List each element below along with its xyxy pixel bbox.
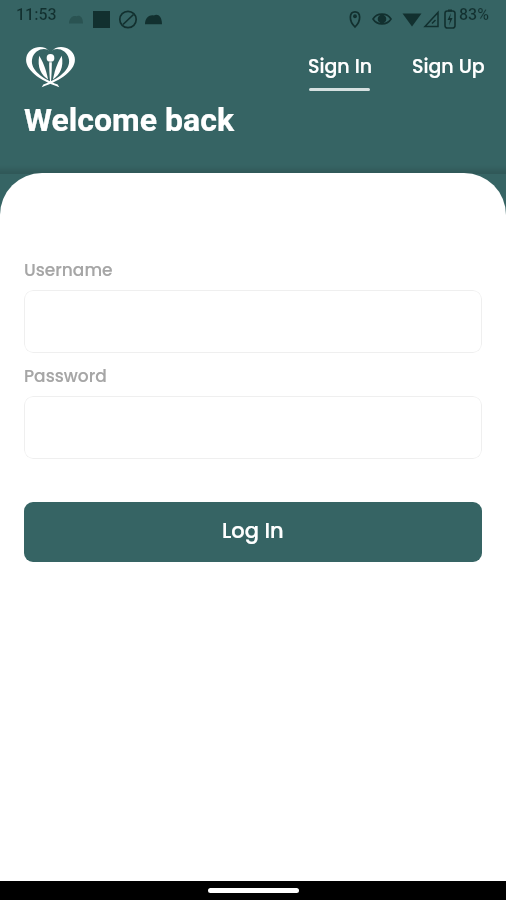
button[interactable]: Sign Up xyxy=(404,49,492,92)
staticText: Sign Up xyxy=(412,53,485,80)
button[interactable]: Sign In xyxy=(296,49,384,95)
staticText: Welcome back xyxy=(24,101,235,139)
button[interactable]: Log In xyxy=(24,502,482,562)
staticText: 83% xyxy=(459,5,489,24)
staticText: Sign In xyxy=(308,53,372,80)
staticText: 11:53 xyxy=(16,5,57,24)
staticText: Username xyxy=(24,258,113,282)
staticText: Log In xyxy=(222,516,284,545)
staticText: Password xyxy=(24,364,107,388)
button[interactable]: App logo xyxy=(23,45,78,88)
